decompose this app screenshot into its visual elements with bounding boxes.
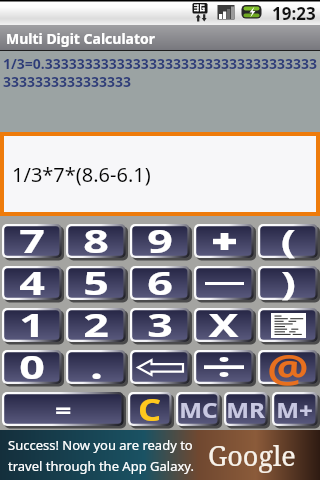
staticText: MR [226, 394, 266, 424]
staticText: Success! Now you are ready to [8, 436, 193, 454]
button[interactable]: 6 [128, 262, 192, 304]
button[interactable]: Minus [192, 262, 256, 304]
button[interactable]: 2 [64, 304, 128, 346]
button[interactable]: 9 [128, 220, 192, 262]
button[interactable]: Success! Now you are ready to [0, 430, 320, 480]
staticText: 4 [19, 261, 46, 305]
button[interactable]: 1 [0, 304, 64, 346]
staticText: X [209, 303, 239, 347]
button[interactable]: M+ [270, 388, 320, 430]
button[interactable]: 1/3*7*(8.6-6.1) [4, 136, 316, 212]
staticText: . [90, 345, 103, 389]
button[interactable]: . [64, 346, 128, 388]
staticText: = [55, 394, 72, 424]
button[interactable]: MR [222, 388, 270, 430]
staticText: 7 [19, 219, 46, 263]
staticText: 8 [83, 219, 110, 263]
button[interactable]: History [256, 304, 320, 346]
staticText: C [138, 389, 162, 430]
staticText: 19:23 [272, 2, 316, 25]
button[interactable]: ) [256, 262, 320, 304]
staticText: ) [281, 261, 296, 305]
staticText: 1/3*7*(8.6-6.1) [12, 161, 151, 188]
button[interactable]: @ [256, 346, 320, 388]
staticText: travel through the App Galaxy. [8, 457, 194, 475]
button[interactable]: 7 [0, 220, 64, 262]
button[interactable]: 8 [64, 220, 128, 262]
staticText: M+ [276, 394, 314, 424]
staticText: 2 [83, 303, 110, 347]
staticText: 1 [19, 303, 46, 347]
staticText: Google [208, 437, 296, 474]
button[interactable]: 3 [128, 304, 192, 346]
staticText: Multi Digit Calculator [6, 29, 156, 48]
button[interactable]: 4 [0, 262, 64, 304]
button[interactable]: C [126, 388, 174, 430]
staticText: 0 [19, 345, 46, 389]
button[interactable]: 0 [0, 346, 64, 388]
staticText: ( [281, 219, 296, 263]
staticText: MC [179, 394, 218, 424]
staticText: 9 [147, 219, 174, 263]
button[interactable]: X [192, 304, 256, 346]
button[interactable]: Plus [192, 220, 256, 262]
button[interactable]: ( [256, 220, 320, 262]
staticText: 5 [83, 261, 110, 305]
button[interactable]: Divide [192, 346, 256, 388]
button[interactable]: Backspace [128, 346, 192, 388]
button[interactable]: MC [174, 388, 222, 430]
staticText: @ [267, 340, 309, 394]
staticText: 3 [147, 303, 174, 347]
button[interactable]: = [0, 388, 126, 430]
staticText: 1/3=0.3333333333333333333333333333333333… [3, 54, 320, 91]
button[interactable]: 5 [64, 262, 128, 304]
staticText: 6 [147, 261, 174, 305]
